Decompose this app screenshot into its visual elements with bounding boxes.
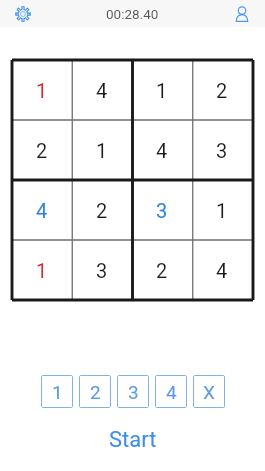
staticText: 3 <box>128 381 139 403</box>
button[interactable]: 4 <box>192 240 252 300</box>
staticText: 1 <box>96 139 108 162</box>
button[interactable]: 3 <box>117 375 149 408</box>
button[interactable]: 2 <box>132 240 192 300</box>
staticText: 1 <box>36 79 48 102</box>
staticText: 4 <box>156 139 168 162</box>
button[interactable]: 3 <box>132 180 192 240</box>
button[interactable]: 2 <box>79 375 111 408</box>
button[interactable]: 3 <box>72 240 132 300</box>
button[interactable]: 1 <box>192 180 252 240</box>
staticText: 2 <box>96 199 108 222</box>
button[interactable]: 1 <box>132 60 192 120</box>
staticText: 3 <box>216 139 228 162</box>
staticText: 4 <box>36 199 48 222</box>
button[interactable]: 2 <box>12 120 72 180</box>
staticText: 3 <box>96 259 108 282</box>
staticText: 4 <box>166 381 177 403</box>
button[interactable]: 2 <box>192 60 252 120</box>
staticText: 4 <box>216 259 228 282</box>
staticText: 2 <box>36 139 48 162</box>
staticText: 2 <box>90 381 101 403</box>
button[interactable]: 1 <box>12 60 72 120</box>
staticText: 2 <box>156 259 168 282</box>
button[interactable]: 2 <box>72 180 132 240</box>
button[interactable]: 4 <box>155 375 187 408</box>
button[interactable]: 1 <box>12 240 72 300</box>
button[interactable]: 1 <box>72 120 132 180</box>
button[interactable]: 4 <box>12 180 72 240</box>
staticText: 1 <box>52 381 63 403</box>
staticText: 3 <box>156 199 168 222</box>
button[interactable]: Settings <box>7 0 39 27</box>
staticText: Start <box>109 427 157 453</box>
staticText: 1 <box>36 259 48 282</box>
staticText: 1 <box>156 79 168 102</box>
button[interactable]: Account <box>226 0 258 27</box>
staticText: 00:28.40 <box>106 6 159 22</box>
button[interactable]: Start <box>97 422 169 456</box>
button[interactable]: 4 <box>72 60 132 120</box>
staticText: X <box>203 381 215 403</box>
button[interactable]: 4 <box>132 120 192 180</box>
button[interactable]: X <box>193 375 225 408</box>
staticText: 1 <box>216 199 228 222</box>
staticText: 4 <box>96 79 108 102</box>
button[interactable]: 1 <box>41 375 73 408</box>
button[interactable]: 3 <box>192 120 252 180</box>
staticText: 2 <box>216 79 228 102</box>
